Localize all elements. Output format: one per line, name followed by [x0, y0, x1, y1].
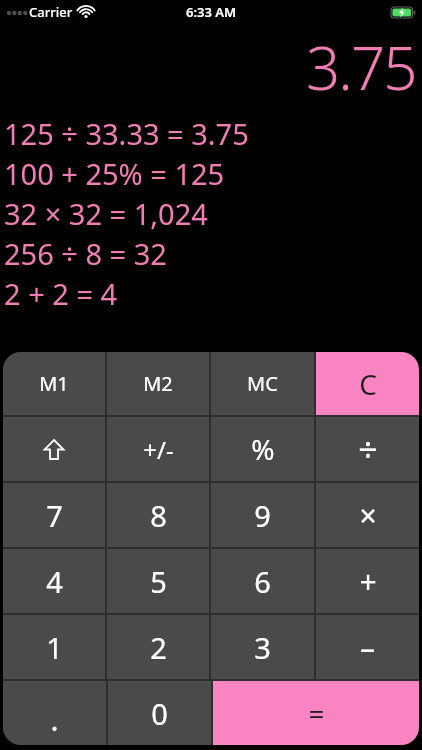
staticText: – [360, 627, 375, 668]
button[interactable]: 4 [3, 549, 105, 613]
staticText: . [50, 699, 59, 740]
button[interactable]: 9 [211, 483, 314, 547]
staticText: Carrier [29, 3, 73, 21]
staticText: MC [247, 370, 278, 397]
button[interactable]: ÷ [316, 417, 419, 481]
button[interactable]: – [316, 615, 419, 679]
button[interactable]: 7 [3, 483, 105, 547]
staticText: 2 + 2 = 4 [4, 274, 118, 313]
staticText: M2 [143, 370, 173, 397]
staticText: 2 [150, 628, 167, 667]
button[interactable]: 2 [107, 615, 209, 679]
button[interactable]: × [316, 483, 419, 547]
button[interactable]: 8 [107, 483, 209, 547]
staticText: % [251, 430, 275, 468]
staticText: 3.75 [306, 26, 416, 108]
button[interactable]: 0 [108, 681, 211, 745]
staticText: 7 [46, 496, 63, 535]
staticText: 100 + 25% = 125 [4, 154, 225, 193]
button[interactable]: MC [211, 352, 314, 415]
button[interactable]: C [316, 352, 419, 415]
staticText: 32 × 32 = 1,024 [4, 194, 208, 233]
staticText: 8 [150, 496, 167, 535]
staticText: 256 ÷ 8 = 32 [4, 234, 167, 273]
staticText: 9 [254, 496, 271, 535]
staticText: = [308, 694, 325, 732]
button[interactable]: 1 [3, 615, 105, 679]
button[interactable]: +/- [107, 417, 209, 481]
staticText: 6:33 AM [186, 3, 237, 21]
staticText: 5 [150, 562, 167, 601]
staticText: M1 [39, 370, 69, 397]
staticText: 6 [254, 562, 271, 601]
staticText: 3 [254, 628, 271, 667]
button[interactable]: M2 [107, 352, 209, 415]
button[interactable]: 3 [211, 615, 314, 679]
staticText: ÷ [358, 426, 378, 472]
staticText: 0 [151, 694, 168, 733]
button[interactable]: 5 [107, 549, 209, 613]
staticText: C [359, 365, 377, 403]
button[interactable]: . [3, 681, 106, 745]
staticText: +/- [143, 433, 174, 466]
staticText: + [359, 561, 377, 602]
staticText: 125 ÷ 33.33 = 3.75 [4, 114, 249, 153]
button[interactable]: 6 [211, 549, 314, 613]
staticText: × [359, 495, 377, 536]
staticText: 1 [46, 628, 63, 667]
button[interactable]: M1 [3, 352, 105, 415]
button[interactable]: + [316, 549, 419, 613]
staticText: 4 [46, 562, 63, 601]
button[interactable]: = [213, 681, 419, 745]
button[interactable]: % [211, 417, 314, 481]
button[interactable] [3, 417, 105, 481]
